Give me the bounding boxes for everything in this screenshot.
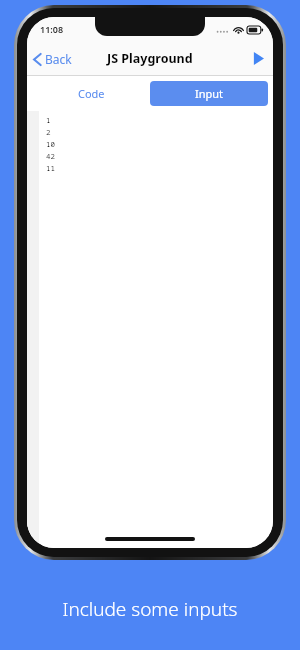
staticText: Back (45, 51, 72, 67)
staticText: JS Playground (107, 50, 193, 67)
staticText: Input (195, 86, 224, 101)
button[interactable]: Back (27, 47, 80, 71)
button[interactable]: Code (32, 81, 150, 106)
staticText: 11 (46, 163, 55, 173)
button[interactable]: Input (150, 81, 268, 106)
staticText: 1 (46, 115, 51, 125)
staticText: 11:08 (40, 23, 64, 35)
staticText: 10 (46, 139, 55, 149)
staticText: 42 (46, 151, 55, 161)
staticText: Code (78, 86, 105, 101)
staticText: 2 (46, 127, 51, 137)
staticText: Include some inputs (0, 596, 300, 622)
button[interactable]: Run (244, 46, 273, 71)
